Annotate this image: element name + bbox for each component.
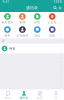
staticText: 通讯录 [26, 5, 38, 10]
button[interactable]: 标签 [30, 13, 45, 24]
staticText: 群聊 [19, 21, 25, 24]
button[interactable]: 消息 [30, 26, 45, 37]
button[interactable]: 阿里 [0, 44, 64, 54]
staticText: 标签 [34, 21, 40, 24]
staticText: R [60, 67, 61, 69]
staticText: B [60, 17, 61, 19]
staticText: 9:41 [2, 0, 9, 4]
staticText: K [60, 45, 61, 47]
staticText: A [2, 39, 4, 43]
staticText: 消息 [34, 34, 40, 37]
staticText: 阿里 [9, 47, 15, 50]
staticText: E [60, 27, 61, 28]
staticText: F [60, 30, 61, 31]
staticText: 发现 [37, 96, 43, 99]
button[interactable]: 发现 [32, 91, 48, 99]
button[interactable]: 服务 [0, 26, 15, 37]
button[interactable]: 微信 [0, 91, 16, 99]
staticText: L [60, 48, 61, 50]
button[interactable]: Search [53, 6, 58, 10]
staticText: 企业微信 [16, 34, 28, 37]
staticText: 新的朋友 [1, 21, 13, 24]
button[interactable]: 新的朋友 [0, 13, 15, 24]
button[interactable]: 群聊 [15, 13, 30, 24]
button[interactable]: 我 [48, 91, 64, 99]
staticText: W [60, 82, 61, 84]
staticText: M [60, 51, 61, 53]
staticText: 我 [54, 96, 57, 99]
staticText: H [60, 36, 61, 38]
staticText: O [60, 58, 61, 59]
staticText: 服务 [4, 34, 10, 37]
button[interactable]: Add [58, 6, 62, 10]
staticText: D [60, 23, 61, 25]
staticText: 微信 [5, 96, 11, 99]
button[interactable]: 通讯录 [16, 91, 32, 99]
staticText: P [60, 61, 61, 62]
button[interactable]: 企业微信 [15, 26, 30, 37]
staticText: V [60, 79, 61, 81]
staticText: C [60, 20, 61, 22]
staticText: 100% [53, 0, 61, 4]
staticText: G [60, 33, 61, 35]
staticText: U [60, 76, 61, 78]
staticText: 公众号 [48, 21, 57, 24]
staticText: Q [60, 64, 61, 66]
button[interactable]: 设置 [45, 26, 60, 37]
staticText: 通讯录 [19, 96, 28, 99]
staticText: A [60, 14, 61, 16]
staticText: 设置 [49, 34, 55, 37]
button[interactable]: 公众号 [45, 13, 60, 24]
